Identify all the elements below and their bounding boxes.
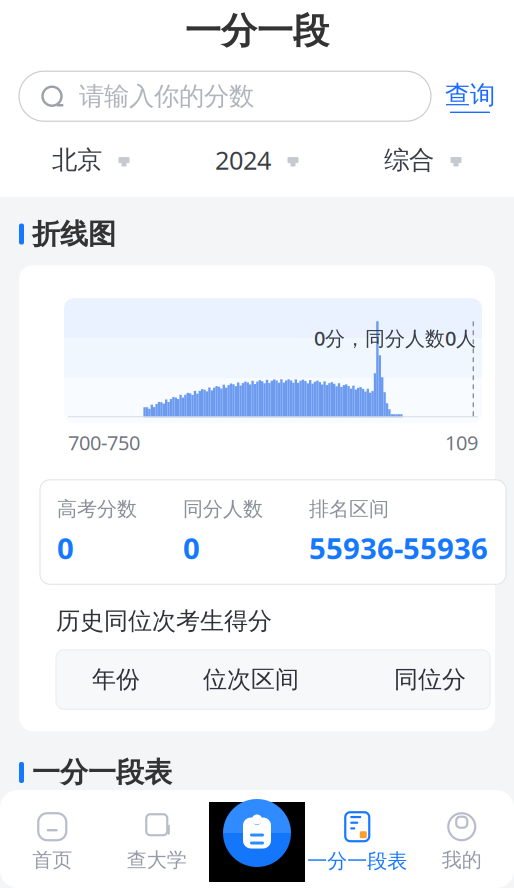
- staticText: 0: [183, 528, 200, 567]
- staticText: 查大学: [127, 848, 187, 872]
- staticText: 我的: [442, 848, 482, 872]
- staticText: 2024: [215, 143, 271, 177]
- button[interactable]: 一分一段表: [305, 805, 409, 879]
- staticText: 首页: [32, 848, 72, 872]
- staticText: 位次区间: [203, 665, 299, 694]
- staticText: 0分，同分人数0人: [314, 325, 476, 351]
- staticText: 查询: [445, 79, 495, 111]
- button[interactable]: 北京: [8, 136, 174, 184]
- staticText: 北京: [52, 144, 102, 176]
- staticText: 55936-55936: [309, 528, 488, 567]
- staticText: 700-750: [68, 429, 140, 456]
- staticText: 0: [57, 528, 74, 567]
- staticText: 109: [445, 429, 478, 456]
- button[interactable]: 查大学: [104, 806, 209, 878]
- button[interactable]: 我的: [409, 806, 514, 878]
- button[interactable]: 查询: [445, 79, 495, 113]
- staticText: 请输入你的分数: [79, 81, 254, 112]
- staticText: 一分一段表: [307, 849, 407, 873]
- staticText: 排名区间: [309, 497, 389, 521]
- staticText: 一分一段: [185, 9, 329, 53]
- staticText: 同分人数: [183, 497, 263, 521]
- staticText: 一分一段表: [32, 755, 172, 790]
- button[interactable]: 2024: [174, 135, 340, 185]
- staticText: 同位分: [394, 665, 466, 694]
- staticText: 高考分数: [57, 497, 137, 521]
- button[interactable]: 综合: [340, 136, 506, 184]
- staticText: 折线图: [32, 217, 116, 251]
- button[interactable]: 首页: [0, 806, 104, 878]
- button[interactable]: 一分一段: [223, 799, 291, 867]
- staticText: 年份: [92, 665, 140, 694]
- staticText: 综合: [384, 144, 434, 176]
- button[interactable]: 请输入你的分数: [19, 71, 431, 121]
- staticText: 历史同位次考生得分: [56, 606, 272, 636]
